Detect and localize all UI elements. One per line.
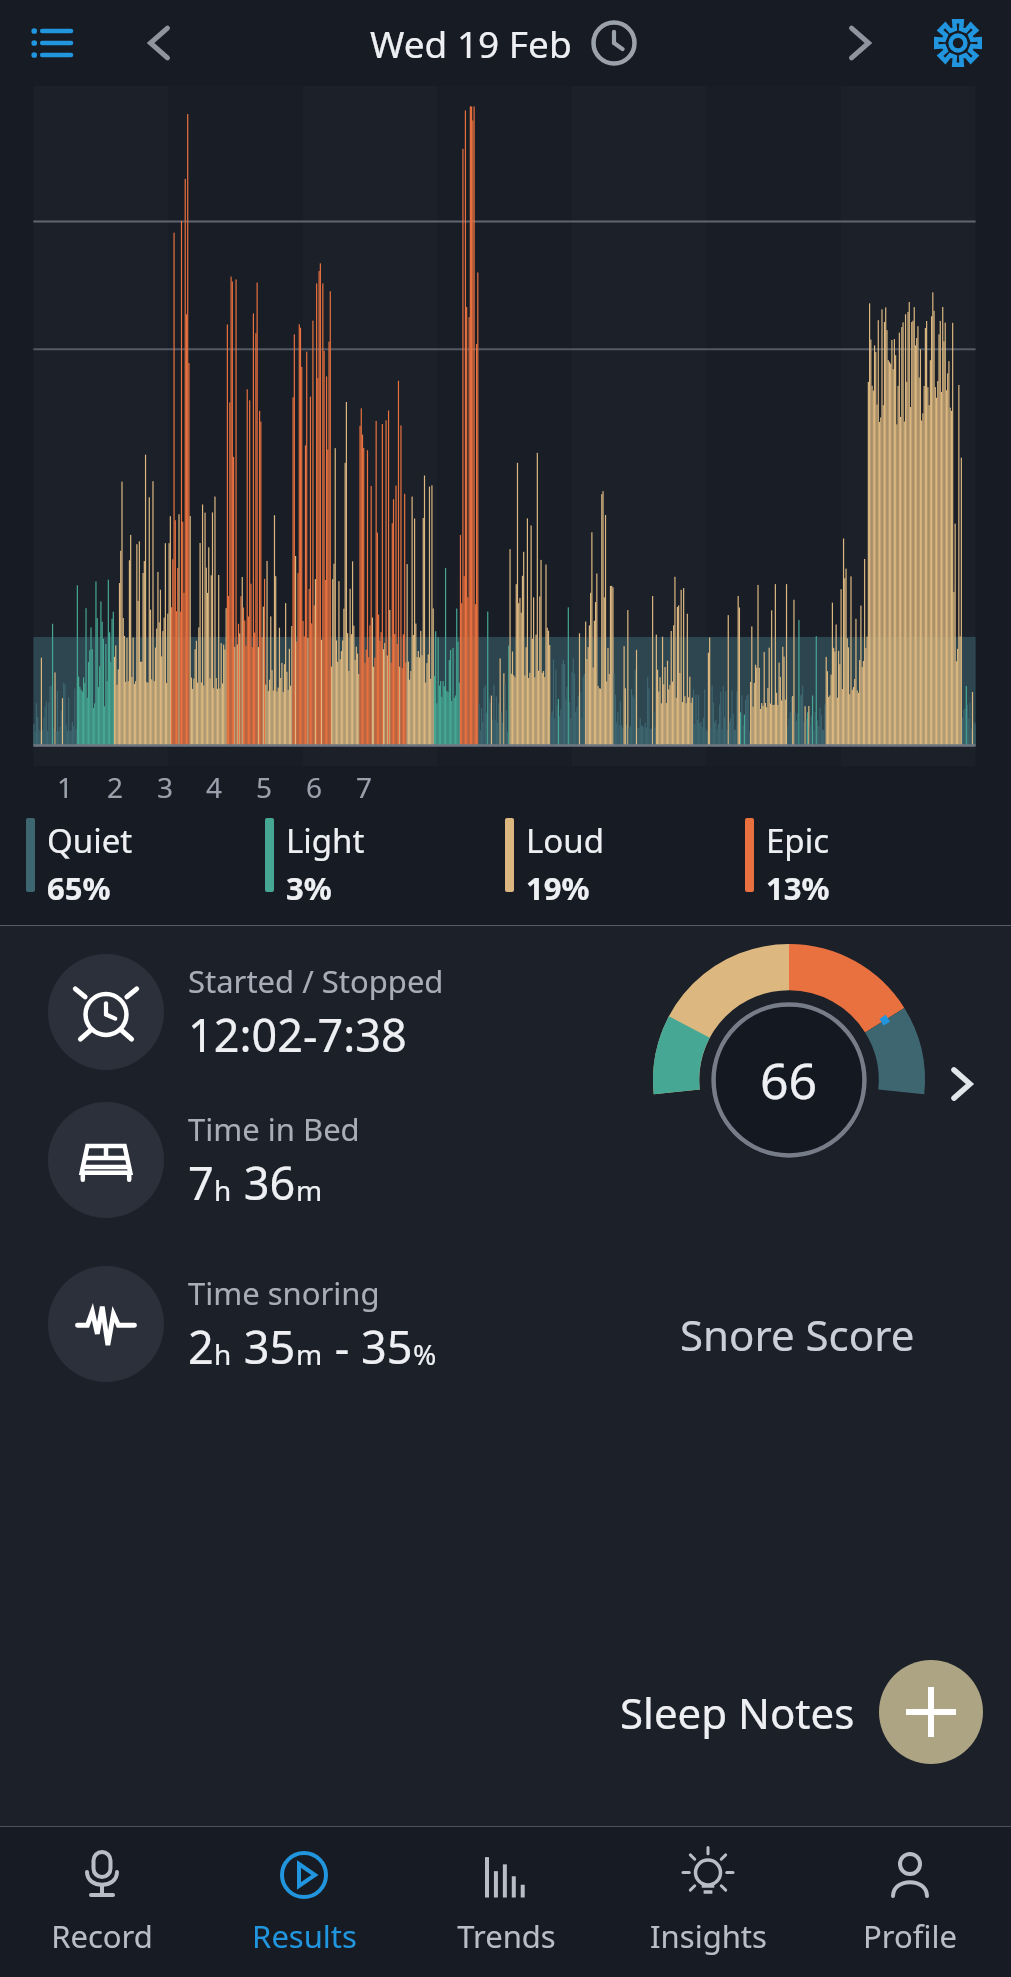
button[interactable]: More details — [933, 1056, 989, 1112]
staticText: Wed 19 Feb — [370, 18, 572, 68]
staticText: Insights — [650, 1915, 767, 1957]
staticText: 65% — [47, 867, 111, 909]
staticText: 66 — [760, 1046, 818, 1114]
staticText: Profile — [863, 1915, 957, 1957]
button[interactable]: Light — [265, 818, 505, 909]
staticText: Loud — [526, 818, 604, 863]
button[interactable]: Record — [0, 1827, 203, 1977]
staticText: 1 — [57, 768, 74, 806]
staticText: Snore Score — [680, 1306, 915, 1363]
button[interactable]: List — [22, 14, 80, 72]
staticText: h — [214, 1171, 232, 1209]
staticText: Record — [51, 1915, 153, 1957]
button[interactable]: Loud — [505, 818, 745, 909]
button[interactable]: Trends — [405, 1827, 607, 1977]
staticText: Time snoring — [188, 1272, 380, 1314]
staticText: Time in Bed — [188, 1108, 360, 1150]
staticText: 5 — [256, 768, 273, 806]
staticText: m — [296, 1171, 323, 1209]
staticText: 19% — [526, 867, 590, 909]
other: Add sleep note — [879, 1660, 983, 1764]
button[interactable]: Sleep Notes — [620, 1660, 983, 1764]
button[interactable]: Time — [586, 15, 642, 71]
button[interactable]: Profile — [809, 1827, 1011, 1977]
staticText: % — [413, 1335, 437, 1373]
button[interactable]: Previous day — [128, 11, 192, 75]
staticText: m — [296, 1335, 323, 1373]
button[interactable]: Time snoring — [48, 1266, 1011, 1382]
staticText: h — [214, 1335, 232, 1373]
staticText: 3 — [157, 768, 174, 806]
staticText: Trends — [457, 1915, 556, 1957]
button[interactable]: Started / Stopped — [48, 954, 1011, 1070]
staticText: 35 — [232, 1316, 296, 1377]
staticText: - 35 — [323, 1316, 413, 1377]
button[interactable]: Sleep score 66 — [653, 944, 925, 1216]
staticText: 36 — [232, 1152, 296, 1213]
staticText: 12:02-7:38 — [188, 1004, 407, 1065]
staticText: 3% — [286, 867, 332, 909]
staticText: Quiet — [47, 818, 133, 863]
staticText: Light — [286, 818, 365, 863]
button[interactable]: Insights — [607, 1827, 809, 1977]
button[interactable]: Results — [203, 1827, 405, 1977]
button[interactable]: Quiet — [26, 818, 265, 909]
staticText: 2 — [188, 1316, 214, 1377]
button[interactable]: Next day — [827, 11, 891, 75]
staticText: Started / Stopped — [188, 960, 444, 1002]
staticText: 7 — [356, 768, 373, 806]
staticText: 7 — [188, 1152, 214, 1213]
button[interactable]: Settings — [927, 12, 989, 74]
button[interactable]: Time in Bed — [48, 1102, 1011, 1218]
staticText: Results — [252, 1915, 357, 1957]
staticText: 13% — [766, 867, 830, 909]
staticText: Sleep Notes — [620, 1684, 855, 1741]
staticText: 2 — [107, 768, 124, 806]
button[interactable]: Epic — [745, 818, 985, 909]
staticText: Epic — [766, 818, 829, 863]
staticText: 4 — [206, 768, 223, 806]
staticText: 6 — [306, 768, 323, 806]
